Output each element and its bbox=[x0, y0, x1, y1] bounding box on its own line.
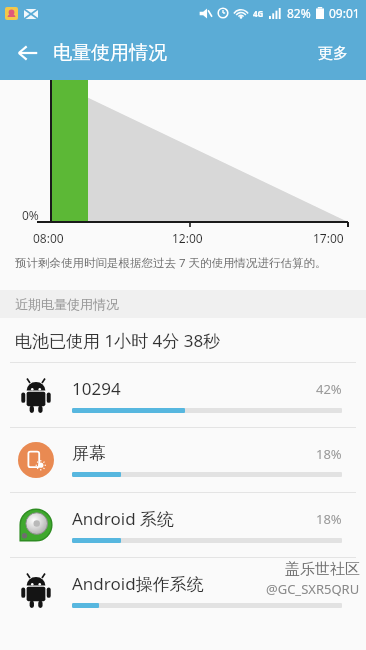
staticText: 4G bbox=[253, 8, 264, 19]
staticText: 42% bbox=[316, 380, 342, 398]
staticText: 08:00 bbox=[33, 230, 64, 246]
staticText: 18% bbox=[316, 510, 342, 528]
button[interactable]: 返回 bbox=[8, 33, 48, 73]
staticText: 0% bbox=[22, 207, 39, 223]
button[interactable]: 屏幕 bbox=[0, 428, 366, 492]
staticText: 屏幕 bbox=[72, 443, 316, 464]
staticText: Android 系统 bbox=[72, 507, 316, 530]
button[interactable]: Android操作系统 bbox=[0, 558, 366, 622]
staticText: 82% bbox=[287, 5, 311, 21]
staticText: 更多 bbox=[318, 44, 348, 63]
staticText: 12:00 bbox=[172, 230, 203, 246]
staticText: 盖乐世社区 bbox=[285, 560, 360, 579]
staticText: 电池已使用 1小时 4分 38秒 bbox=[15, 329, 221, 352]
button[interactable]: 更多 bbox=[308, 36, 358, 71]
button[interactable]: Android 系统 bbox=[0, 493, 366, 557]
staticText: Android操作系统 bbox=[72, 572, 342, 595]
button[interactable]: 10294 bbox=[0, 363, 366, 427]
staticText: @GC_SXR5QRU bbox=[266, 580, 360, 598]
staticText: 18% bbox=[316, 445, 342, 463]
staticText: 预计剩余使用时间是根据您过去 7 天的使用情况进行估算的。 bbox=[15, 255, 327, 271]
staticText: 09:01 bbox=[329, 5, 360, 21]
staticText: 17:00 bbox=[313, 230, 344, 246]
staticText: 电量使用情况 bbox=[53, 41, 167, 65]
staticText: 10294 bbox=[72, 377, 316, 400]
staticText: 近期电量使用情况 bbox=[15, 296, 119, 312]
